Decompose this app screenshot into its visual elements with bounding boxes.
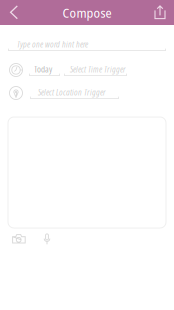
staticText: Select Time Trigger [70, 64, 126, 75]
button[interactable]: Share [147, 0, 173, 25]
button[interactable]: Record voice note [37, 231, 57, 247]
staticText: Select Location Trigger [38, 87, 106, 98]
button[interactable]: Add photo [9, 231, 29, 247]
button[interactable]: Select Location Trigger [30, 86, 119, 100]
button[interactable]: Today [29, 63, 60, 77]
button[interactable]: Type one word hint here [8, 38, 166, 52]
button[interactable]: Select Time Trigger [64, 63, 127, 77]
button[interactable]: Back [1, 0, 27, 25]
staticText: Compose [62, 3, 111, 22]
staticText: Type one word hint here [17, 39, 88, 50]
staticText: Today [34, 64, 52, 75]
